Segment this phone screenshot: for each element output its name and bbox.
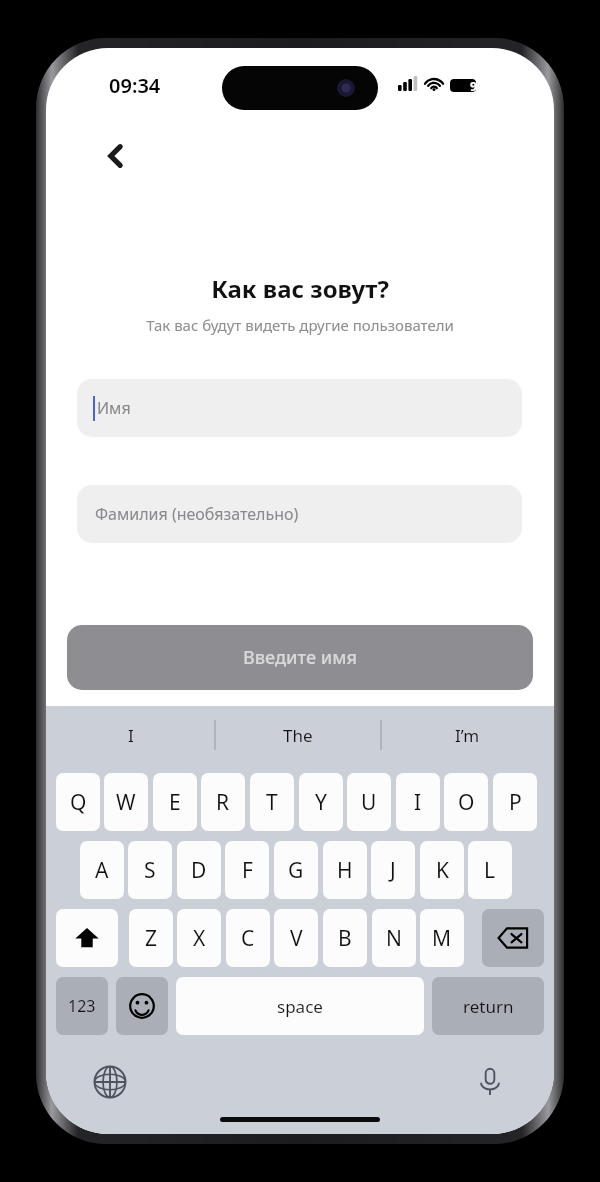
button[interactable]: D [177,841,221,899]
button[interactable]: E [153,773,197,831]
staticText: U [361,788,377,817]
button[interactable]: Change keyboard [82,1054,138,1110]
button[interactable]: L [468,841,512,899]
staticText: O [458,788,475,817]
button[interactable]: I [396,773,440,831]
button[interactable]: I [46,706,215,764]
staticText: Q [70,788,87,817]
staticText: The [283,724,313,747]
button[interactable]: Dictate [462,1054,518,1110]
staticText: C [241,924,255,953]
staticText: S [144,856,156,885]
staticText: L [484,856,496,885]
button[interactable]: Q [56,773,100,831]
staticText: A [95,856,109,885]
button[interactable]: O [444,773,488,831]
button[interactable]: P [493,773,537,831]
button[interactable]: Фамилия (необязательно) [77,485,522,543]
button[interactable]: Z [129,909,173,967]
staticText: I [128,724,134,747]
staticText: I’m [455,724,480,747]
button[interactable]: Backspace [482,909,544,967]
button[interactable]: Emoji [116,977,168,1035]
staticText: return [463,995,514,1018]
staticText: Так вас будут видеть другие пользователи [146,315,454,335]
staticText: P [509,788,522,817]
button[interactable]: W [104,773,148,831]
button[interactable]: V [274,909,318,967]
staticText: T [266,788,278,817]
staticText: H [337,856,353,885]
staticText: M [432,924,452,953]
staticText: I [414,788,422,817]
button[interactable]: K [420,841,464,899]
staticText: space [277,995,323,1018]
button[interactable]: F [225,841,269,899]
button[interactable]: S [128,841,172,899]
button[interactable]: C [226,909,270,967]
staticText: F [242,856,253,885]
button[interactable]: Y [299,773,343,831]
staticText: X [193,924,206,953]
staticText: N [386,924,402,953]
staticText: R [216,788,230,817]
button[interactable]: space [176,977,424,1035]
staticText: E [169,788,181,817]
staticText: B [338,924,352,953]
staticText: Фамилия (необязательно) [95,503,299,525]
staticText: D [191,856,207,885]
button[interactable]: Back [90,130,142,182]
staticText: W [116,788,136,817]
button[interactable]: Имя [77,379,522,437]
button[interactable]: Введите имя [67,625,533,690]
button[interactable]: return [432,977,544,1035]
button[interactable]: H [323,841,367,899]
button[interactable]: U [347,773,391,831]
button[interactable]: X [177,909,221,967]
staticText: K [436,856,449,885]
button[interactable]: J [371,841,415,899]
button[interactable]: B [323,909,367,967]
staticText: 123 [68,995,96,1017]
staticText: Y [315,788,327,817]
staticText: Введите имя [243,645,357,670]
staticText: Имя [97,397,131,419]
staticText: 90 [470,78,484,94]
staticText: Как вас зовут? [211,272,389,305]
button[interactable]: 123 [56,977,108,1035]
staticText: G [288,856,304,885]
button[interactable]: The [215,706,381,764]
staticText: J [390,856,396,885]
button[interactable]: T [250,773,294,831]
button[interactable]: G [274,841,318,899]
staticText: Z [145,924,158,953]
button[interactable]: A [80,841,124,899]
button[interactable]: N [372,909,416,967]
staticText: 09:34 [109,72,161,99]
button[interactable]: M [420,909,464,967]
button[interactable]: I’m [381,706,554,764]
button[interactable]: Shift [56,909,118,967]
staticText: V [290,924,303,953]
button[interactable]: R [201,773,245,831]
